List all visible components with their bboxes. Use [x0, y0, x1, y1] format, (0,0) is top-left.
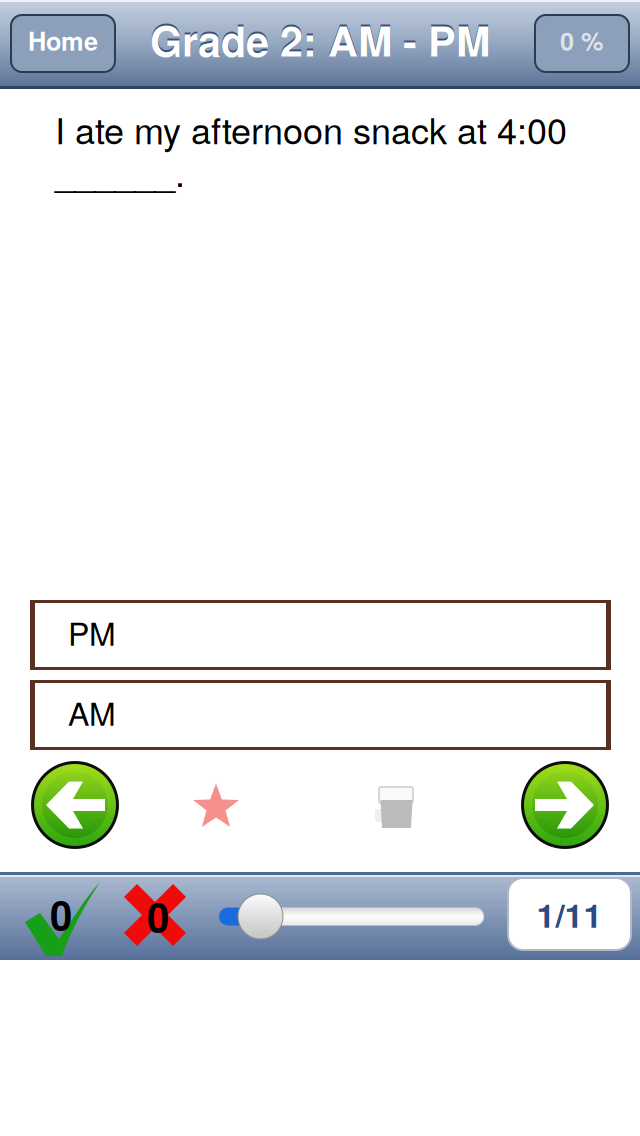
button[interactable]: 1/11 — [508, 878, 631, 950]
staticText: Grade 2: AM - PM — [150, 8, 490, 67]
staticText: Grade 2: AM - PM — [150, 10, 490, 69]
button[interactable]: Home — [11, 15, 115, 72]
button[interactable]: Delete — [371, 782, 421, 834]
staticText: 0 % — [560, 22, 604, 59]
button[interactable]: Mark favorite — [190, 782, 242, 834]
staticText: Home — [28, 22, 98, 59]
staticText: 0 — [147, 887, 169, 944]
staticText: PM — [68, 609, 116, 655]
button[interactable]: AM — [30, 680, 611, 750]
staticText: 1/11 — [536, 890, 602, 938]
staticText: AM — [68, 689, 116, 735]
button[interactable]: PM — [30, 600, 611, 670]
staticText: I ate my afternoon snack at 4:00 ______. — [55, 103, 567, 197]
button[interactable]: 0 % — [535, 15, 629, 72]
button[interactable]: Next question — [521, 761, 609, 849]
staticText: 0 — [50, 885, 72, 942]
button[interactable]: Previous question — [31, 761, 119, 849]
